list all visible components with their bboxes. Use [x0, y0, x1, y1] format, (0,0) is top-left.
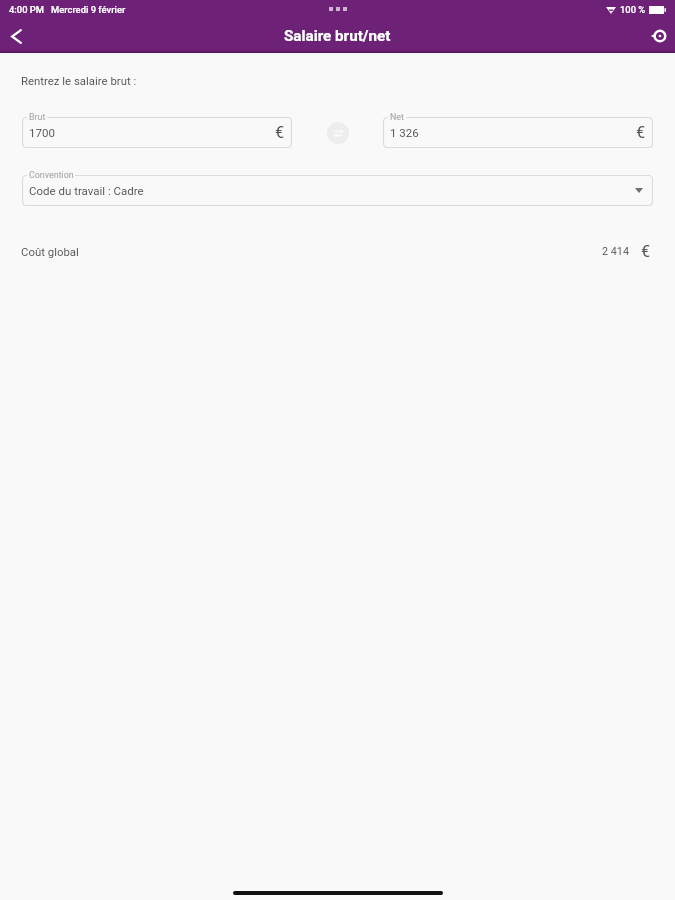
button[interactable]: History [644, 21, 674, 51]
staticText: Net [390, 112, 404, 122]
button[interactable]: Net [383, 117, 653, 148]
staticText: 100 % [620, 4, 646, 15]
staticText: 4:00 PM [9, 4, 45, 15]
staticText: € [641, 242, 651, 261]
staticText: Convention [29, 170, 74, 180]
staticText: 1 326 [390, 126, 419, 139]
button[interactable]: Brut [22, 117, 292, 148]
staticText: Salaire brut/net [284, 27, 391, 45]
button[interactable]: Swap [327, 122, 349, 144]
staticText: Rentrez le salaire brut : [21, 74, 137, 87]
staticText: Coût global [21, 245, 79, 258]
staticText: Code du travail : Cadre [29, 184, 144, 197]
staticText: 1700 [29, 126, 55, 139]
staticText: 2 414 [602, 245, 629, 258]
staticText: Mercredi 9 février [51, 4, 126, 15]
staticText: Brut [29, 112, 46, 122]
staticText: € [636, 123, 646, 142]
button[interactable]: Convention [22, 175, 653, 206]
staticText: € [275, 123, 285, 142]
button[interactable]: Back [1, 21, 31, 51]
